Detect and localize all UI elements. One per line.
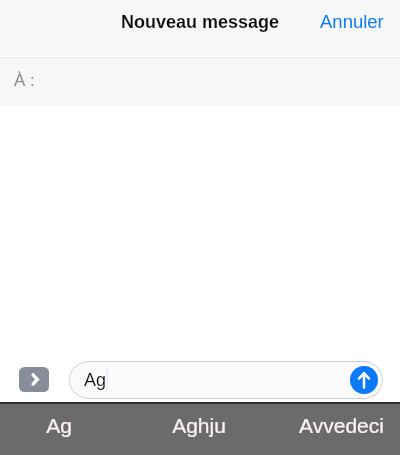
button[interactable]: À : xyxy=(0,58,400,106)
staticText: Ag xyxy=(84,370,107,390)
button[interactable]: Ag xyxy=(69,361,383,399)
staticText: À : xyxy=(14,71,35,90)
button[interactable]: Aghju xyxy=(139,404,259,455)
button[interactable]: Ag xyxy=(0,404,119,455)
button[interactable]: Send xyxy=(350,366,378,394)
staticText: Ag xyxy=(46,414,72,437)
button[interactable]: Avvedeci xyxy=(281,404,400,455)
staticText: Nouveau message xyxy=(121,12,280,32)
staticText: Aghju xyxy=(172,414,226,437)
button[interactable]: Show apps xyxy=(19,367,49,392)
staticText: Annuler xyxy=(320,11,384,32)
button[interactable]: Annuler xyxy=(310,5,394,38)
staticText: Avvedeci xyxy=(299,414,384,437)
